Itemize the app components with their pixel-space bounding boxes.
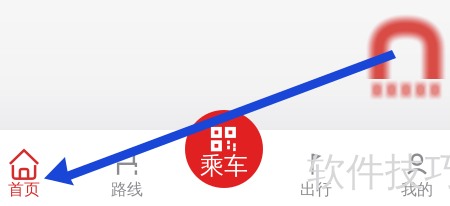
- button[interactable]: 出行: [272, 143, 360, 205]
- staticText: 乘车: [200, 151, 248, 181]
- staticText: 出行: [300, 180, 332, 199]
- staticText: 我的: [401, 180, 433, 199]
- staticText: 软件技巧: [307, 148, 450, 196]
- button[interactable]: 我的: [373, 143, 450, 205]
- button[interactable]: 乘车: [185, 110, 263, 188]
- button[interactable]: 首页: [0, 143, 68, 205]
- staticText: 首页: [8, 180, 40, 199]
- staticText: 路线: [111, 180, 143, 199]
- button[interactable]: 路线: [83, 143, 171, 205]
